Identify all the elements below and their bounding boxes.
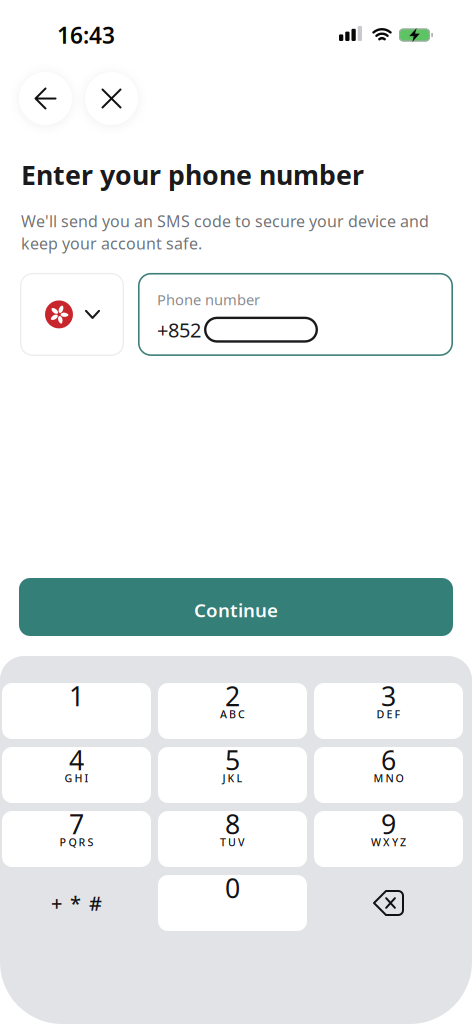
button[interactable]: Back <box>19 72 72 125</box>
button[interactable]: 5 <box>158 747 307 803</box>
button[interactable]: 9 <box>314 811 463 867</box>
button[interactable]: 7 <box>2 811 151 867</box>
staticText: 1 <box>69 678 84 714</box>
button[interactable]: 0 <box>158 875 307 931</box>
button[interactable]: Continue <box>19 578 453 636</box>
staticText: We'll send you an SMS code to secure you… <box>21 210 429 254</box>
staticText: W X Y Z <box>371 835 406 849</box>
staticText: G H I <box>64 771 88 785</box>
staticText: 4 <box>69 742 84 778</box>
button[interactable]: 8 <box>158 811 307 867</box>
staticText: Phone number <box>157 290 260 309</box>
staticText: 7 <box>69 806 84 842</box>
staticText: 6 <box>381 742 396 778</box>
staticText: 3 <box>381 678 396 714</box>
staticText: A B C <box>220 707 245 721</box>
staticText: Enter your phone number <box>21 157 364 192</box>
staticText: D E F <box>376 707 400 721</box>
staticText: 5 <box>225 742 240 778</box>
button[interactable]: Close <box>85 72 138 125</box>
button[interactable]: 2 <box>158 683 307 739</box>
staticText: 0 <box>225 870 240 906</box>
button[interactable]: 4 <box>2 747 151 803</box>
staticText: P Q R S <box>59 835 93 849</box>
staticText: 2 <box>225 678 240 714</box>
staticText: T U V <box>220 835 245 849</box>
button[interactable]: Symbols <box>2 875 151 931</box>
button[interactable]: 1 <box>2 683 151 739</box>
staticText: M N O <box>373 771 403 785</box>
staticText: + * # <box>51 890 102 916</box>
staticText: 8 <box>225 806 240 842</box>
button[interactable]: 6 <box>314 747 463 803</box>
staticText: Continue <box>194 598 278 622</box>
staticText: +852 <box>157 316 201 343</box>
button[interactable]: Phone number <box>138 273 453 356</box>
button[interactable]: Delete <box>314 875 463 931</box>
staticText: J K L <box>222 771 242 785</box>
staticText: 9 <box>381 806 396 842</box>
button[interactable]: 3 <box>314 683 463 739</box>
button[interactable]: Select country <box>20 273 124 356</box>
staticText: 16:43 <box>57 20 115 50</box>
